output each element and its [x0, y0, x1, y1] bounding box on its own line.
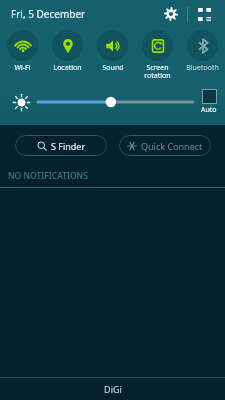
staticText: NO NOTIFICATIONS	[8, 170, 88, 182]
staticText: DiGi	[104, 383, 122, 395]
staticText: Bluetooth	[186, 63, 219, 73]
button[interactable]: Screen rotation	[135, 27, 180, 80]
staticText: Auto	[201, 105, 217, 115]
button[interactable]: Edit quick settings	[191, 1, 217, 27]
staticText: S Finder	[51, 140, 86, 152]
button[interactable]: Quick Connect	[119, 135, 211, 156]
staticText: Screen rotation	[144, 63, 171, 80]
button[interactable]: Bluetooth	[180, 27, 225, 73]
button[interactable]: Location	[45, 27, 90, 73]
staticText: Fri, 5 December	[11, 7, 86, 21]
button[interactable]: Auto brightness	[199, 89, 219, 115]
staticText: Location	[53, 63, 82, 73]
button[interactable]: S Finder	[15, 135, 107, 156]
button[interactable]: Brightness	[38, 91, 193, 113]
staticText: Sound	[102, 63, 124, 73]
button[interactable]: Settings	[158, 1, 184, 27]
button[interactable]: Sound	[90, 27, 135, 73]
staticText: Wi-Fi	[14, 63, 31, 73]
button[interactable]: Wi-Fi	[0, 27, 45, 73]
staticText: Quick Connect	[141, 140, 203, 152]
